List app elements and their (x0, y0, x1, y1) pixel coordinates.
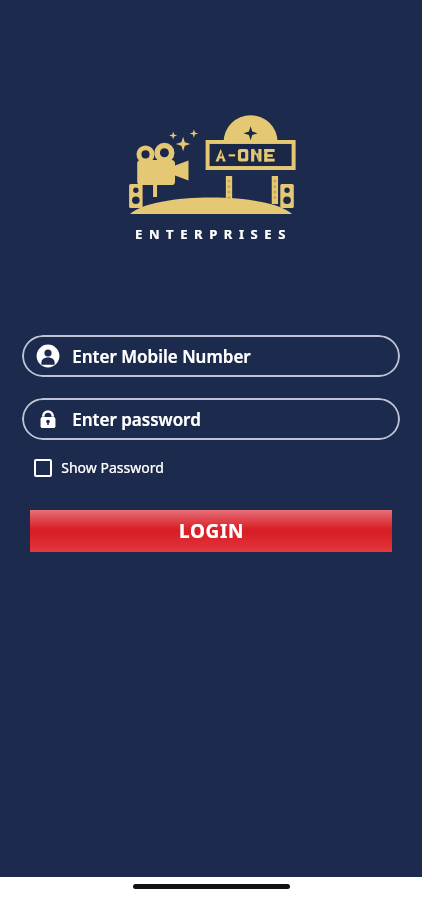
button[interactable]: LOGIN (30, 510, 392, 552)
staticText: Enter Mobile Number (72, 345, 251, 368)
button[interactable]: Password (22, 398, 400, 440)
staticText: LOGIN (179, 518, 244, 544)
staticText: E N T E R P R I S E S (135, 225, 287, 243)
staticText: Enter password (72, 408, 201, 431)
other: Password (36, 407, 60, 431)
button[interactable]: Show Password (30, 454, 168, 481)
staticText: Show Password (61, 458, 164, 477)
button[interactable]: Mobile number (22, 335, 400, 377)
other: Mobile number (36, 344, 60, 368)
